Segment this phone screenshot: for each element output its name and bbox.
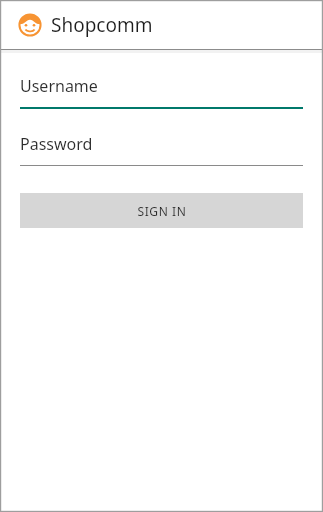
- staticText: SIGN IN: [137, 203, 187, 219]
- button[interactable]: SIGN IN: [20, 193, 303, 228]
- button[interactable]: Password: [20, 132, 303, 166]
- staticText: Shopcomm: [51, 12, 153, 38]
- other: Shopcomm logo: [18, 13, 42, 37]
- button[interactable]: Username: [20, 74, 303, 109]
- staticText: Username: [20, 75, 98, 97]
- staticText: Password: [20, 133, 93, 155]
